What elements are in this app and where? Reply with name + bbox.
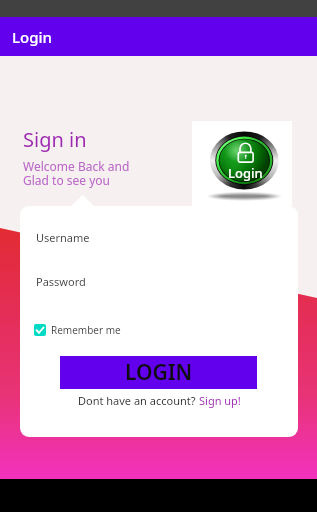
- button[interactable]: Sign up!: [199, 393, 241, 408]
- staticText: Sign in: [23, 126, 87, 153]
- button[interactable]: Username: [36, 223, 298, 251]
- staticText: Welcome Back and Glad to see you: [23, 158, 130, 189]
- staticText: Dont have an account?: [78, 393, 199, 408]
- button[interactable]: Password: [36, 267, 298, 295]
- staticText: Username: [36, 230, 90, 245]
- staticText: LOGIN: [125, 358, 193, 387]
- button[interactable]: LOGIN: [60, 356, 257, 389]
- staticText: Password: [36, 274, 86, 289]
- button[interactable]: Login: [192, 121, 292, 206]
- staticText: Login: [12, 27, 52, 47]
- staticText: Login: [228, 164, 263, 182]
- button[interactable]: Remember me: [34, 321, 121, 339]
- staticText: Remember me: [51, 323, 121, 337]
